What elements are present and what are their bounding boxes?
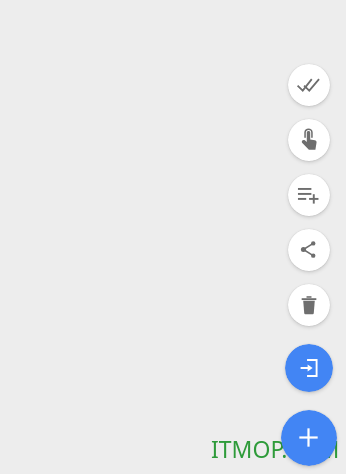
staticText: ITMOP.COM (211, 433, 340, 464)
button[interactable]: Mark all done (288, 64, 330, 106)
button[interactable]: Select (288, 119, 330, 161)
button[interactable]: Add to list (288, 174, 330, 216)
button[interactable]: Open in app (285, 344, 333, 392)
button[interactable]: Delete (288, 284, 330, 326)
button[interactable]: Add (281, 410, 337, 466)
button[interactable]: Share (288, 229, 330, 271)
